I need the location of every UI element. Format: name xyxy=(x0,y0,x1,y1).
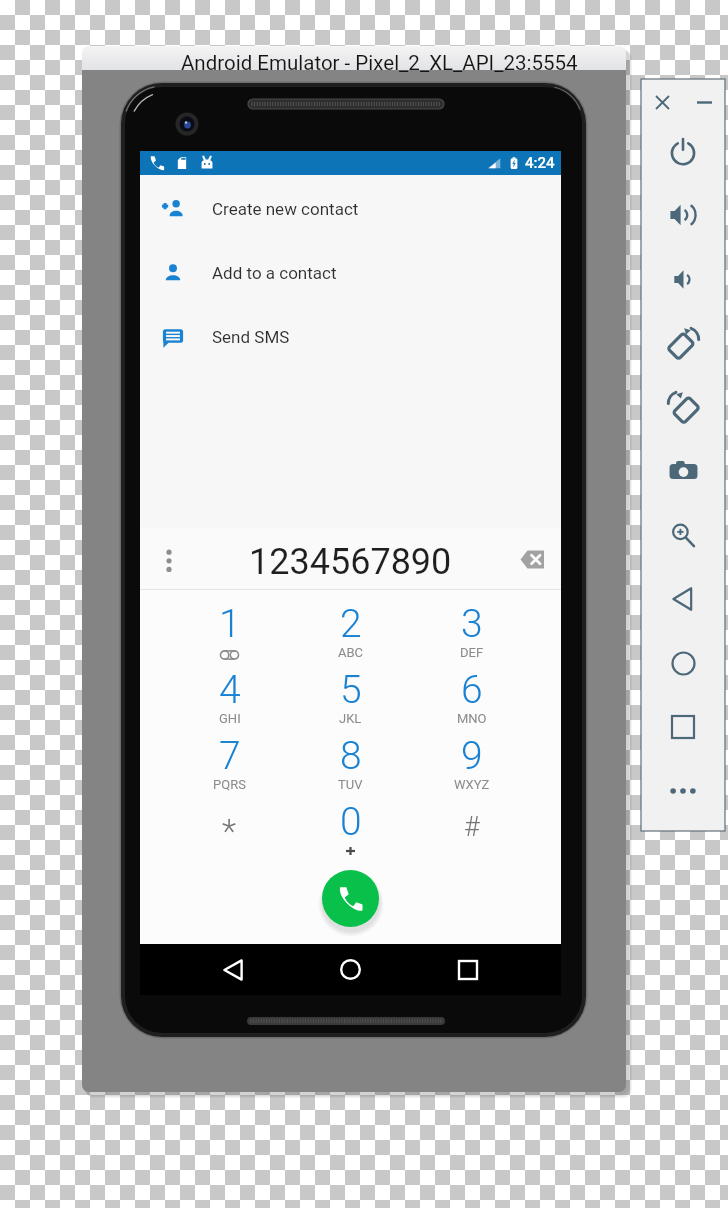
button[interactable]: Add to a contact xyxy=(140,241,561,305)
button[interactable]: Close xyxy=(641,79,683,119)
staticText: 1 xyxy=(219,601,241,647)
button[interactable]: Create new contact xyxy=(140,177,561,241)
button[interactable]: Take screenshot xyxy=(641,439,725,503)
button[interactable]: Call xyxy=(322,870,379,927)
button[interactable]: Back xyxy=(641,567,725,631)
button[interactable]: Recents xyxy=(409,944,527,995)
button[interactable]: Minimize xyxy=(683,79,725,119)
staticText: PQRS xyxy=(213,777,246,792)
staticText: 3 xyxy=(461,601,483,647)
staticText: 0 xyxy=(340,799,362,845)
button[interactable]: Power xyxy=(641,119,725,183)
staticText: Android Emulator - Pixel_2_XL_API_23:555… xyxy=(181,51,578,75)
button[interactable]: 6 xyxy=(411,665,532,711)
button[interactable]: Send SMS xyxy=(140,305,561,369)
staticText: 4:24 xyxy=(525,154,555,172)
staticText: 8 xyxy=(340,733,362,779)
button[interactable]: Overview xyxy=(641,695,725,759)
button[interactable]: 4 xyxy=(169,665,290,711)
staticText: 2 xyxy=(340,601,362,647)
button[interactable]: 0 xyxy=(290,797,411,843)
staticText: 9 xyxy=(461,733,483,779)
staticText: 6 xyxy=(461,667,483,713)
button[interactable]: Back xyxy=(174,944,291,995)
staticText: WXYZ xyxy=(454,777,490,792)
button[interactable]: 7 xyxy=(169,731,290,777)
staticText: Send SMS xyxy=(212,327,290,347)
button[interactable]: 2 xyxy=(290,599,411,645)
staticText: 7 xyxy=(219,733,241,779)
staticText: TUV xyxy=(338,777,363,792)
staticText: 4 xyxy=(219,667,241,713)
button[interactable]: * xyxy=(169,797,290,836)
button[interactable]: Delete xyxy=(503,528,561,590)
staticText: MNO xyxy=(457,711,487,726)
button[interactable]: Volume up xyxy=(641,183,725,247)
staticText: * xyxy=(222,812,237,851)
button[interactable]: 5 xyxy=(290,665,411,711)
staticText: ABC xyxy=(338,645,364,660)
button[interactable]: More xyxy=(641,759,725,823)
button[interactable]: Rotate left xyxy=(641,311,725,375)
button[interactable]: 8 xyxy=(290,731,411,777)
button[interactable]: 1 xyxy=(169,599,290,645)
button[interactable]: 3 xyxy=(411,599,532,645)
staticText: 5 xyxy=(340,667,362,713)
staticText: DEF xyxy=(460,645,484,660)
button[interactable]: Home xyxy=(641,631,725,695)
button[interactable]: Home xyxy=(291,944,409,995)
staticText: JKL xyxy=(339,711,362,726)
staticText: # xyxy=(464,811,480,843)
button[interactable]: 9 xyxy=(411,731,532,777)
staticText: Create new contact xyxy=(212,199,359,219)
staticText: Add to a contact xyxy=(212,263,337,283)
staticText: GHI xyxy=(219,711,241,726)
staticText: 1234567890 xyxy=(249,541,452,583)
button[interactable]: Volume down xyxy=(641,247,725,311)
button[interactable]: Zoom xyxy=(641,503,725,567)
button[interactable]: # xyxy=(411,797,532,829)
button[interactable]: More options xyxy=(140,528,198,590)
button[interactable]: Rotate right xyxy=(641,375,725,439)
